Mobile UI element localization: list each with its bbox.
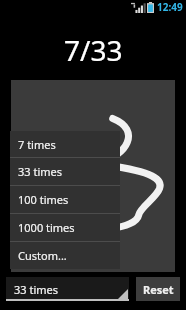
staticText: 7/33 — [64, 31, 123, 65]
staticText: 12:49 — [157, 0, 183, 14]
staticText: 1000 times — [18, 220, 75, 235]
button[interactable]: 33 times — [6, 277, 129, 301]
button[interactable]: 7 times — [10, 131, 120, 157]
staticText: Custom... — [18, 248, 67, 263]
button[interactable]: Custom... — [10, 242, 120, 269]
button[interactable] — [11, 80, 175, 272]
button[interactable]: 100 times — [10, 186, 120, 213]
staticText: 33 times — [14, 282, 59, 297]
staticText: 33 times — [18, 164, 63, 179]
button[interactable]: 33 times — [10, 158, 120, 185]
staticText: 100 times — [18, 192, 69, 207]
staticText: Reset — [143, 282, 174, 297]
staticText: 7 times — [18, 137, 56, 152]
button[interactable]: 1000 times — [10, 214, 120, 241]
button[interactable]: Reset — [136, 277, 180, 301]
